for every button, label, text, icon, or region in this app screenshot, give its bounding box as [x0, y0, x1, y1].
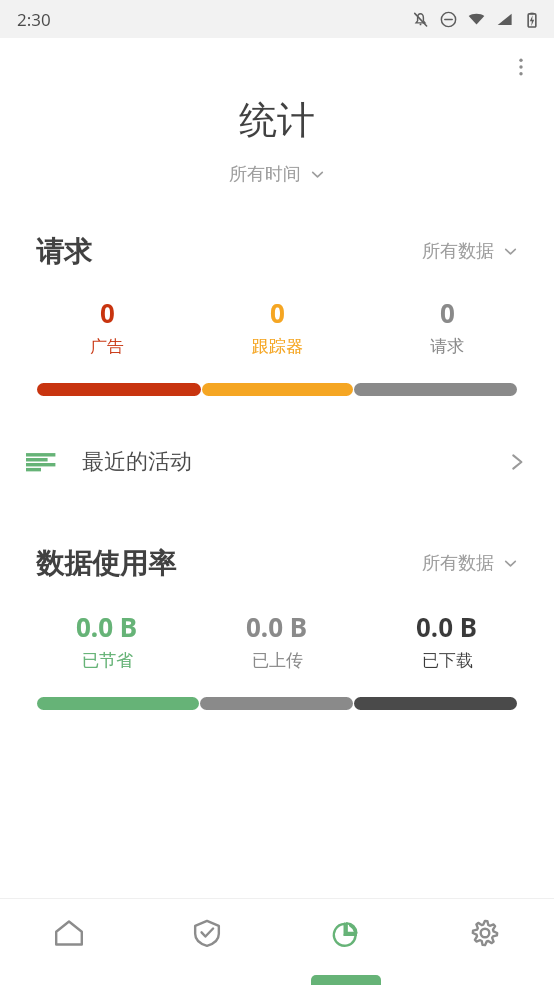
staticText: 统计 [0, 96, 554, 144]
staticText: 0 [270, 295, 285, 330]
staticText: 所有时间 [229, 163, 301, 186]
staticText: 已节省 [82, 650, 133, 671]
button[interactable]: 所有数据 [422, 546, 518, 581]
staticText: 0.0 B [246, 609, 308, 644]
button[interactable]: More options [498, 44, 544, 90]
button[interactable]: Home [0, 899, 138, 985]
staticText: 广告 [90, 336, 124, 357]
staticText: 2:30 [17, 8, 51, 31]
staticText: 0 [440, 295, 455, 330]
button[interactable]: 最近的活动 [0, 434, 554, 490]
button[interactable]: Protection [138, 899, 276, 985]
staticText: 0 [100, 295, 115, 330]
staticText: 0.0 B [76, 609, 138, 644]
button[interactable]: Settings [415, 899, 554, 985]
staticText: 数据使用率 [36, 546, 176, 581]
button[interactable]: 0 [362, 295, 532, 357]
button[interactable]: 0.0 B [192, 609, 362, 671]
staticText: 0.0 B [416, 609, 478, 644]
button[interactable]: 0.0 B [362, 609, 532, 671]
staticText: 跟踪器 [252, 336, 303, 357]
button[interactable]: 0 [192, 295, 362, 357]
button[interactable]: 0 [22, 295, 192, 357]
staticText: 最近的活动 [82, 448, 192, 476]
staticText: 已上传 [252, 650, 303, 671]
staticText: 请求 [430, 336, 464, 357]
staticText: 已下载 [422, 650, 473, 671]
staticText: 所有数据 [422, 552, 494, 575]
staticText: 所有数据 [422, 240, 494, 263]
button[interactable]: 所有时间 [0, 158, 554, 190]
button[interactable]: Statistics [276, 899, 415, 985]
staticText: 请求 [36, 234, 92, 269]
button[interactable]: 所有数据 [422, 234, 518, 269]
button[interactable]: 0.0 B [22, 609, 192, 671]
